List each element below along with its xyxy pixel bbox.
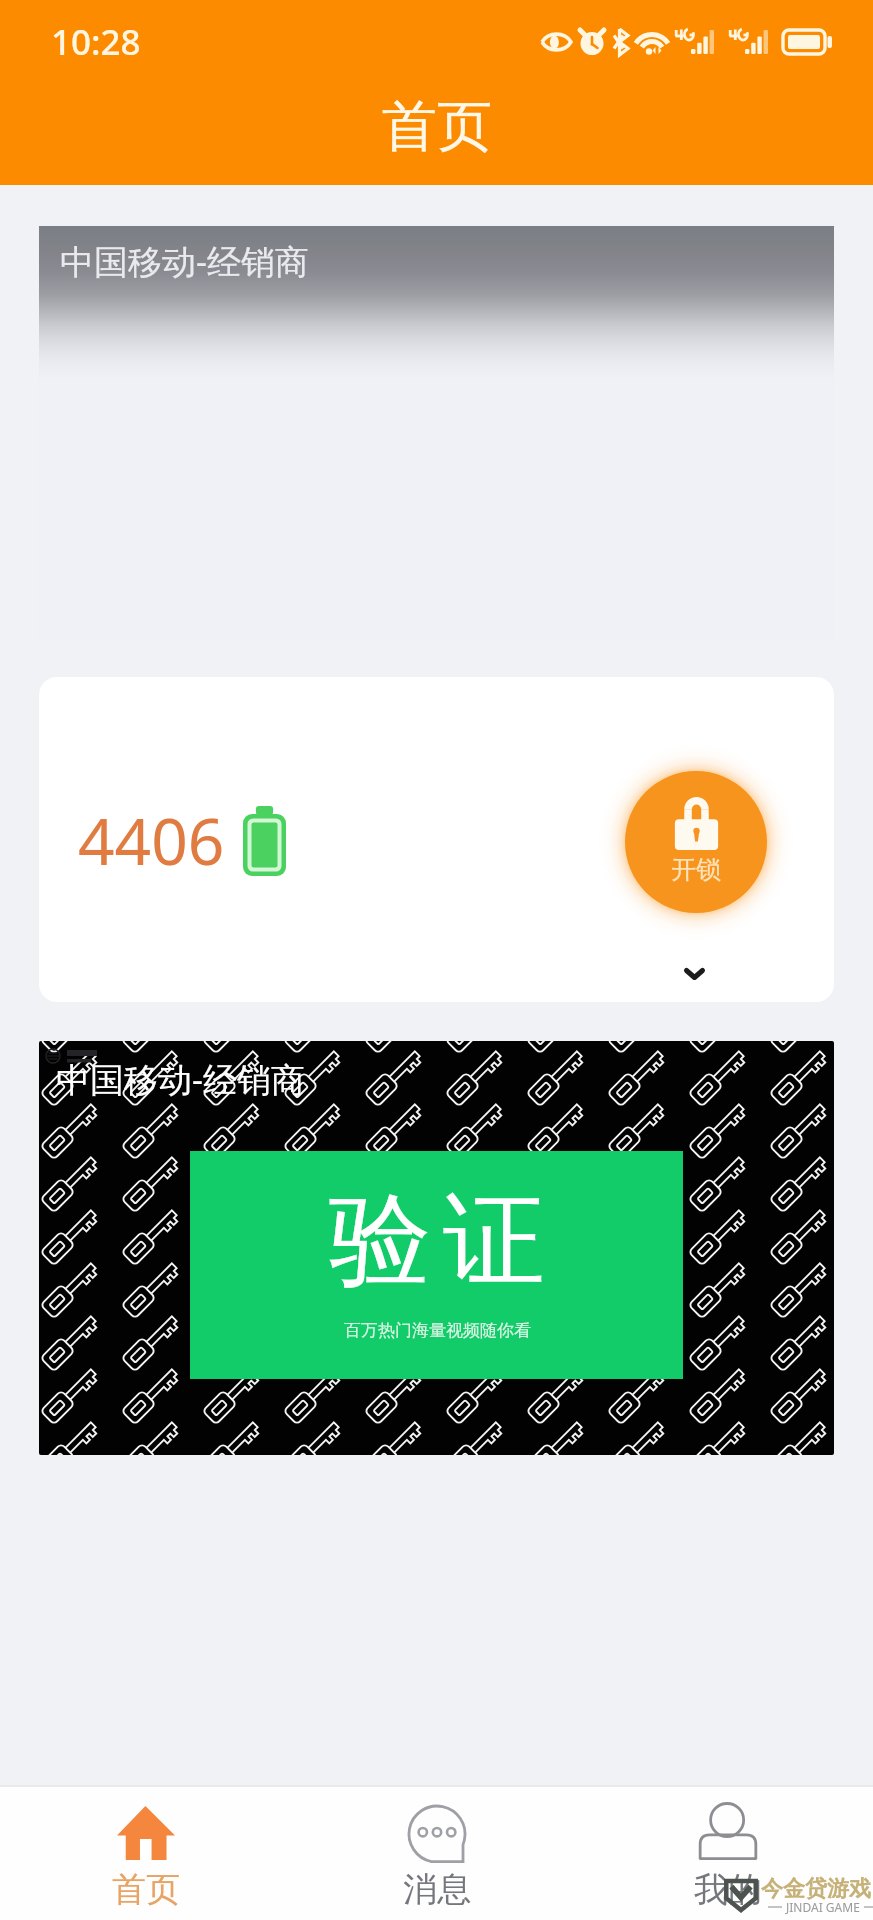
button[interactable]: 开锁 (596, 742, 796, 942)
button[interactable]: 展开 (662, 946, 727, 1002)
staticText: 验证 (323, 1177, 551, 1305)
staticText: 4406 (78, 797, 225, 884)
staticText: JINDAI GAME (786, 1899, 860, 1915)
button[interactable]: 中国移动-经销商 (39, 226, 834, 640)
staticText: 中国移动-经销商 (60, 238, 309, 284)
staticText: 开锁 (671, 854, 721, 885)
staticText: 10:28 (51, 18, 141, 66)
staticText: 消息 (403, 1868, 471, 1911)
staticText: 百万热门海量视频随你看 (344, 1320, 531, 1341)
staticText: 我的 (694, 1868, 762, 1911)
button[interactable]: 我的 (582, 1787, 873, 1920)
button[interactable]: 消息 (291, 1787, 582, 1920)
staticText: 中国移动-经销商 (56, 1056, 305, 1102)
staticText: 今金贷游戏 (761, 1875, 871, 1903)
button[interactable]: 4406 (39, 677, 834, 1002)
button[interactable]: 中国移动-经销商 (39, 1041, 834, 1455)
staticText: 首页 (382, 92, 492, 161)
staticText: 首页 (112, 1868, 180, 1911)
button[interactable]: 首页 (0, 1787, 291, 1920)
